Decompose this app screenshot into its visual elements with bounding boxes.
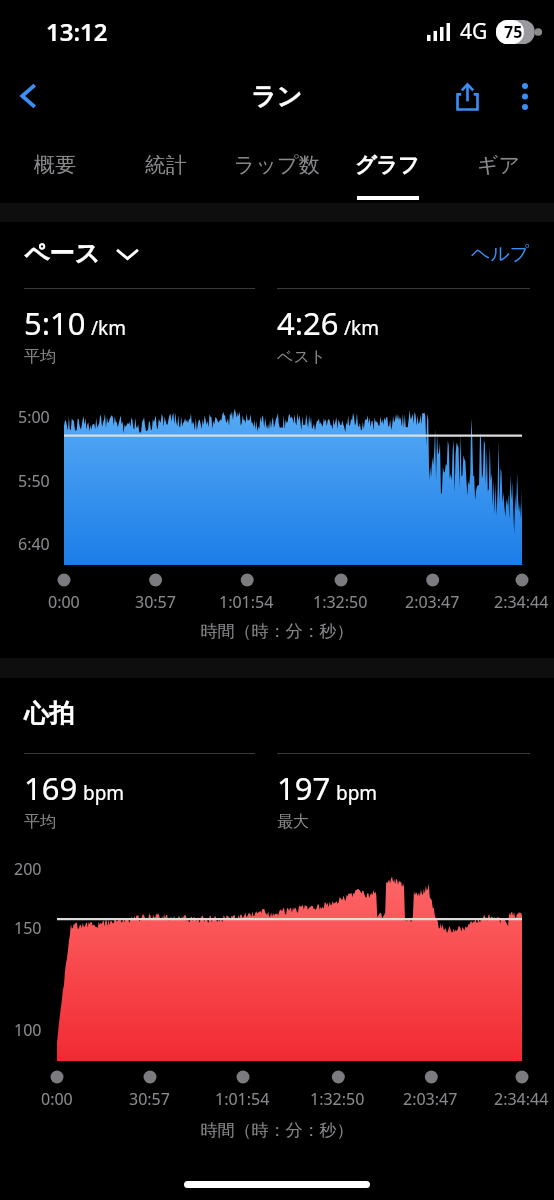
staticText: 平均 (24, 812, 56, 832)
staticText: 5:50 (18, 470, 50, 492)
staticText: 4G (460, 17, 488, 46)
staticText: 30:57 (129, 1088, 170, 1110)
staticText: 75 (504, 21, 523, 43)
staticText: /km (91, 315, 126, 341)
staticText: ラン (251, 81, 303, 112)
staticText: ベスト (277, 347, 327, 367)
staticText: 6:40 (18, 533, 50, 555)
button[interactable]: ペース (24, 238, 138, 269)
staticText: 時間（時：分：秒） (0, 1120, 554, 1141)
staticText: bpm (336, 780, 378, 806)
staticText: 4:26 (277, 302, 339, 344)
button[interactable]: Share (438, 67, 496, 125)
staticText: 200 (14, 858, 42, 880)
staticText: 統計 (145, 152, 187, 178)
staticText: 1:32:50 (313, 591, 368, 613)
staticText: 1:01:54 (215, 1088, 270, 1110)
staticText: 0:00 (41, 1088, 73, 1110)
staticText: 197 (277, 767, 331, 809)
staticText: 13:12 (46, 15, 108, 48)
staticText: 概要 (34, 152, 76, 178)
button[interactable]: ヘルプ (471, 242, 530, 266)
button[interactable]: More options (496, 67, 554, 125)
button[interactable]: 統計 (110, 130, 221, 203)
staticText: 0:00 (48, 591, 80, 613)
staticText: 5:10 (24, 302, 86, 344)
staticText: 1:01:54 (219, 591, 274, 613)
staticText: 2:34:44 (494, 591, 549, 613)
staticText: 最大 (277, 812, 309, 832)
staticText: 2:34:44 (494, 1088, 549, 1110)
staticText: 30:57 (135, 591, 176, 613)
staticText: bpm (83, 780, 125, 806)
button[interactable]: Back (0, 67, 58, 125)
staticText: 平均 (24, 347, 56, 367)
button[interactable]: 概要 (0, 130, 110, 203)
staticText: ギア (477, 152, 520, 178)
button[interactable]: ラップ数 (221, 130, 332, 203)
staticText: 1:32:50 (310, 1088, 365, 1110)
staticText: ラップ数 (234, 152, 320, 178)
staticText: 100 (14, 1019, 42, 1041)
staticText: 5:00 (18, 406, 50, 428)
staticText: 2:03:47 (403, 1088, 458, 1110)
staticText: ヘルプ (471, 242, 530, 266)
staticText: 心拍 (24, 698, 74, 729)
staticText: 150 (14, 917, 42, 939)
staticText: ペース (24, 238, 101, 269)
button[interactable]: ギア (443, 130, 554, 203)
staticText: 2:03:47 (405, 591, 460, 613)
staticText: /km (344, 315, 379, 341)
staticText: グラフ (355, 152, 420, 178)
staticText: 169 (24, 767, 78, 809)
button[interactable]: グラフ (332, 130, 443, 203)
staticText: 時間（時：分：秒） (0, 621, 554, 642)
